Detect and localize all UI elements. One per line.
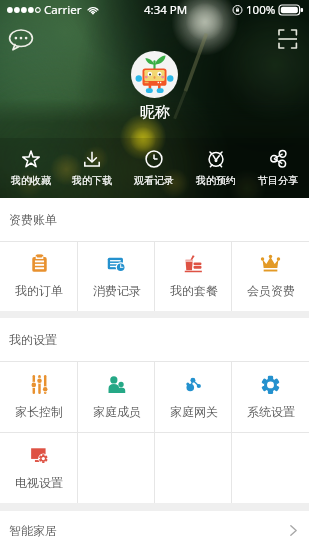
staticText: 我的订单 <box>15 283 63 298</box>
button[interactable]: Scan <box>273 24 303 54</box>
button[interactable]: 家长控制 <box>0 361 78 432</box>
button[interactable]: 会员资费 <box>232 241 309 311</box>
button[interactable]: 观看记录 <box>123 138 185 198</box>
staticText: 我的设置 <box>9 332 57 347</box>
staticText: 我的下载 <box>72 174 112 187</box>
staticText: 我的收藏 <box>11 174 51 187</box>
button[interactable]: 智能家居 <box>0 511 309 550</box>
staticText: 100% <box>246 2 276 18</box>
staticText: 我的预约 <box>196 174 236 187</box>
button[interactable]: 我的下载 <box>61 138 123 198</box>
button[interactable]: 电视设置 <box>0 432 78 503</box>
button[interactable]: 系统设置 <box>232 361 309 432</box>
button[interactable]: 消费记录 <box>78 241 155 311</box>
staticText: 4:34 PM <box>144 2 188 18</box>
staticText: 昵称 <box>140 103 170 122</box>
staticText: 智能家居 <box>9 523 57 538</box>
button[interactable]: 我的预约 <box>185 138 247 198</box>
staticText: 我的套餐 <box>170 283 218 298</box>
staticText: 会员资费 <box>247 283 295 298</box>
staticText: Carrier <box>44 2 82 18</box>
staticText: 资费账单 <box>9 212 57 227</box>
staticText: 家庭成员 <box>93 404 141 419</box>
button[interactable]: 昵称 <box>131 51 178 122</box>
button[interactable]: 我的收藏 <box>0 138 61 198</box>
button[interactable]: 家庭成员 <box>78 361 155 432</box>
staticText: 观看记录 <box>134 174 174 187</box>
staticText: 节目分享 <box>258 174 298 187</box>
staticText: 家长控制 <box>15 404 63 419</box>
staticText: 系统设置 <box>247 404 295 419</box>
button[interactable]: 我的订单 <box>0 241 78 311</box>
staticText: 消费记录 <box>93 283 141 298</box>
button[interactable]: Messages <box>6 24 36 54</box>
staticText: 家庭网关 <box>170 404 218 419</box>
staticText: 电视设置 <box>15 475 63 490</box>
button[interactable]: 节目分享 <box>247 138 309 198</box>
button[interactable]: 我的套餐 <box>155 241 232 311</box>
button[interactable]: 家庭网关 <box>155 361 232 432</box>
